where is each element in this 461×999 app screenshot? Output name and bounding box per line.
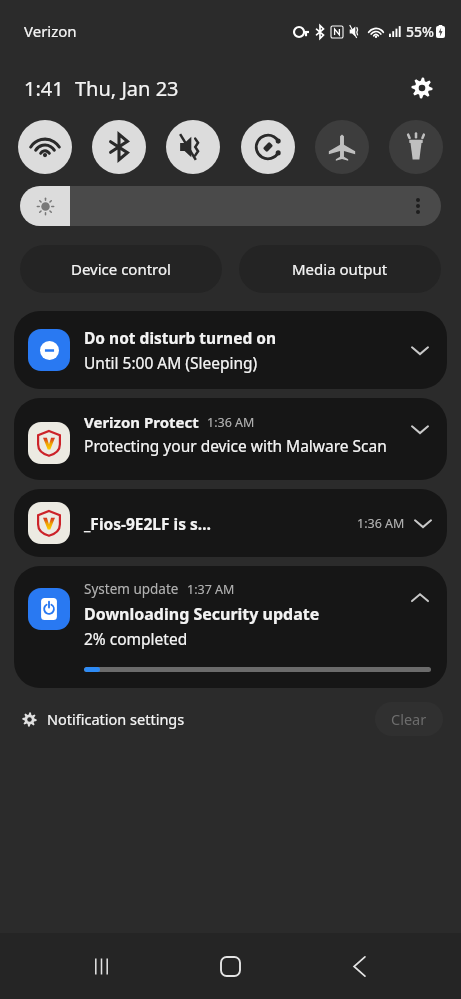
button[interactable]: 1:41 <box>24 75 179 102</box>
button[interactable]: Device control <box>20 245 222 293</box>
staticText: System update <box>84 580 179 598</box>
button[interactable]: Notification settings <box>18 705 189 733</box>
staticText: Until 5:00 AM (Sleeping) <box>84 352 258 373</box>
button[interactable]: System update <box>14 566 447 688</box>
staticText: Notification settings <box>47 709 185 729</box>
button[interactable]: Brightness <box>20 186 441 226</box>
button[interactable]: Do not disturb turned on <box>14 311 447 389</box>
button[interactable]: Airplane mode <box>315 120 369 174</box>
button[interactable]: Expand <box>405 414 435 444</box>
staticText: Thu, Jan 23 <box>75 75 179 102</box>
button[interactable]: Recents <box>74 939 128 993</box>
staticText: Media output <box>292 259 388 279</box>
button[interactable]: _Fios-9E2LF is safe. Turning… <box>14 489 447 557</box>
button[interactable]: Settings <box>405 71 439 105</box>
staticText: Clear <box>391 709 427 729</box>
button[interactable]: Sound mode <box>166 120 220 174</box>
staticText: 55% <box>406 22 434 41</box>
staticText: 1:36 AM <box>357 515 405 532</box>
button[interactable]: Back <box>332 939 386 993</box>
button[interactable]: Clear <box>375 702 443 736</box>
staticText: 1:36 AM <box>207 414 255 431</box>
staticText: Downloading Security update <box>84 603 320 625</box>
staticText: _Fios-9E2LF is safe. Turning… <box>84 513 220 534</box>
button[interactable]: Verizon Protect <box>14 398 447 480</box>
button[interactable]: Expand <box>405 335 435 365</box>
staticText: Verizon Protect <box>84 412 199 432</box>
button[interactable]: Auto rotate <box>241 120 295 174</box>
staticText: 1:41 <box>24 75 64 102</box>
staticText: Protecting your device with Malware Scan <box>84 435 387 456</box>
button[interactable]: More options <box>409 197 427 215</box>
button[interactable]: Home <box>203 939 257 993</box>
staticText: 2% completed <box>84 628 188 649</box>
button[interactable]: Collapse <box>405 582 435 612</box>
staticText: Do not disturb turned on <box>84 327 276 348</box>
button[interactable]: Wi-Fi <box>18 120 72 174</box>
staticText: Verizon <box>24 21 77 41</box>
staticText: Device control <box>71 259 171 279</box>
staticText: 1:37 AM <box>187 581 235 598</box>
button[interactable]: Media output <box>239 245 441 293</box>
button[interactable]: Expand <box>411 511 435 535</box>
button[interactable]: Bluetooth <box>92 120 146 174</box>
button[interactable]: Flashlight <box>389 120 443 174</box>
